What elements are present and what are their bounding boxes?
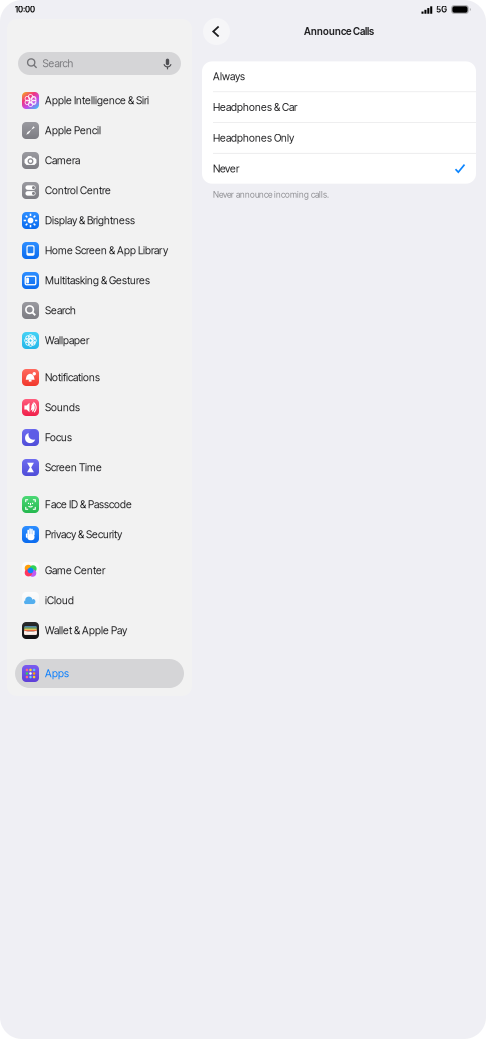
staticText: Face ID & Passcode bbox=[45, 498, 132, 511]
button[interactable]: Game Center bbox=[15, 556, 184, 585]
button[interactable]: Back bbox=[203, 18, 230, 45]
staticText: Search bbox=[42, 57, 73, 70]
button[interactable]: Camera bbox=[15, 146, 184, 175]
staticText: Never announce incoming calls. bbox=[213, 190, 329, 200]
staticText: iCloud bbox=[45, 594, 74, 607]
button[interactable]: Control Centre bbox=[15, 176, 184, 205]
button[interactable]: Privacy & Security bbox=[15, 520, 184, 549]
staticText: Multitasking & Gestures bbox=[45, 274, 150, 287]
staticText: Apple Intelligence & Siri bbox=[45, 94, 149, 107]
staticText: Focus bbox=[45, 431, 72, 444]
staticText: Search bbox=[45, 304, 76, 317]
staticText: Control Centre bbox=[45, 184, 111, 197]
staticText: Headphones Only bbox=[213, 132, 294, 144]
button[interactable]: iCloud bbox=[15, 586, 184, 615]
button[interactable]: Wallpaper bbox=[15, 326, 184, 355]
button[interactable]: Headphones & Car bbox=[202, 92, 476, 122]
button[interactable]: Apps bbox=[15, 659, 184, 688]
button[interactable]: Notifications bbox=[15, 363, 184, 392]
staticText: Camera bbox=[45, 154, 80, 167]
staticText: Sounds bbox=[45, 401, 80, 414]
button[interactable]: Always bbox=[202, 61, 476, 91]
button[interactable]: Headphones Only bbox=[202, 123, 476, 153]
staticText: Display & Brightness bbox=[45, 214, 135, 227]
staticText: Wallpaper bbox=[45, 334, 89, 347]
staticText: Home Screen & App Library bbox=[45, 244, 168, 257]
button[interactable]: Apple Pencil bbox=[15, 116, 184, 145]
button[interactable]: Sounds bbox=[15, 393, 184, 422]
button[interactable]: Focus bbox=[15, 423, 184, 452]
staticText: Screen Time bbox=[45, 461, 102, 474]
staticText: 10:00 bbox=[15, 5, 35, 14]
staticText: Never bbox=[213, 162, 239, 175]
button[interactable]: Home Screen & App Library bbox=[15, 236, 184, 265]
staticText: Announce Calls bbox=[304, 25, 374, 37]
staticText: Always bbox=[213, 70, 245, 83]
staticText: Apple Pencil bbox=[45, 124, 101, 137]
button[interactable]: Wallet & Apple Pay bbox=[15, 616, 184, 645]
button[interactable]: Display & Brightness bbox=[15, 206, 184, 235]
button[interactable]: Face ID & Passcode bbox=[15, 490, 184, 519]
staticText: Game Center bbox=[45, 564, 105, 577]
button[interactable]: Screen Time bbox=[15, 453, 184, 482]
button[interactable]: Search bbox=[15, 296, 184, 325]
staticText: Wallet & Apple Pay bbox=[45, 624, 127, 637]
staticText: Notifications bbox=[45, 371, 100, 384]
staticText: Privacy & Security bbox=[45, 528, 122, 541]
button[interactable]: Apple Intelligence & Siri bbox=[15, 86, 184, 115]
button[interactable]: Multitasking & Gestures bbox=[15, 266, 184, 295]
button[interactable]: Never bbox=[202, 154, 476, 184]
staticText: 5G bbox=[436, 5, 447, 14]
staticText: Headphones & Car bbox=[213, 101, 297, 113]
staticText: Apps bbox=[45, 667, 69, 680]
